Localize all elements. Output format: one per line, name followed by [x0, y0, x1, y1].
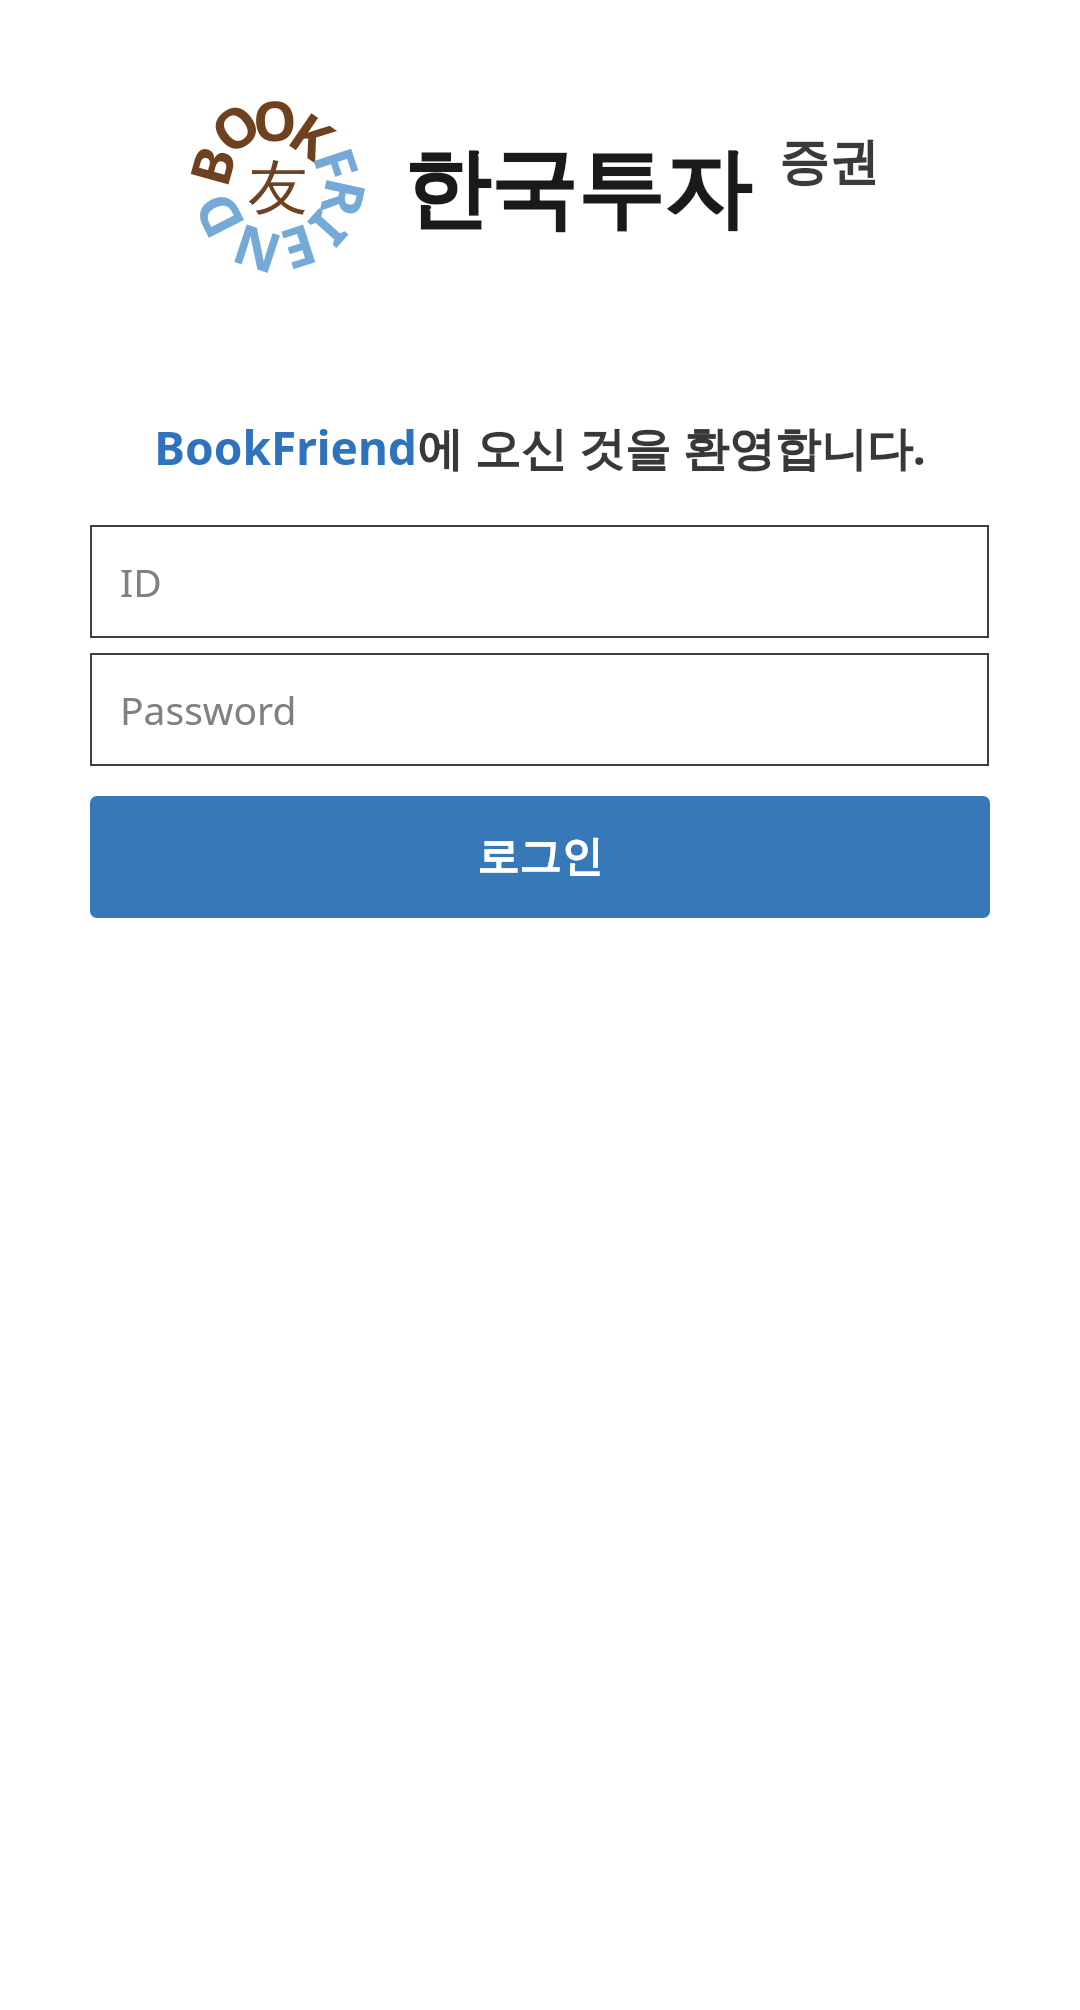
- staticText: 로그인: [477, 831, 603, 884]
- staticText: 한국투자: [403, 135, 751, 245]
- staticText: E: [273, 208, 326, 289]
- staticText: K: [276, 94, 349, 177]
- other: BookFriend logo: [190, 96, 366, 272]
- staticText: F: [297, 138, 378, 191]
- staticText: O: [251, 81, 299, 158]
- staticText: N: [223, 208, 290, 293]
- button[interactable]: 로그인: [90, 796, 990, 918]
- staticText: Password: [120, 683, 297, 736]
- staticText: 증권: [779, 131, 879, 194]
- staticText: 友: [248, 150, 308, 226]
- staticText: O: [195, 83, 275, 170]
- staticText: D: [175, 180, 260, 251]
- button[interactable]: Password: [90, 653, 989, 766]
- staticText: R: [304, 172, 385, 224]
- staticText: ID: [120, 555, 162, 608]
- staticText: BookFriend에 오신 것을 환영합니다.: [0, 416, 1080, 479]
- staticText: B: [170, 138, 253, 193]
- staticText: I: [294, 196, 364, 263]
- button[interactable]: ID: [90, 525, 989, 638]
